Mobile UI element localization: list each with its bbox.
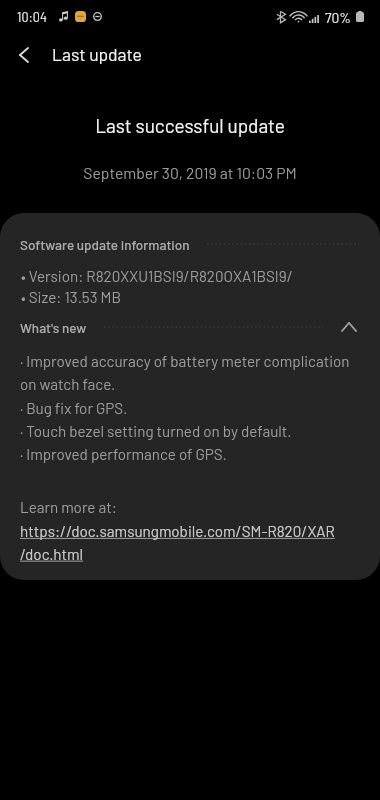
staticText: • Version: R820XXU1BSI9/R820OXA1BSI9/	[21, 267, 293, 285]
staticText: · Bug fix for GPS.	[20, 399, 128, 417]
staticText: 10:04	[17, 9, 47, 24]
button[interactable]: What's new	[0, 317, 380, 337]
staticText: · Improved performance of GPS.	[20, 445, 227, 463]
staticText: Learn more at:	[20, 498, 117, 516]
staticText: September 30, 2019 at 10:03 PM	[0, 163, 380, 182]
staticText: What's new	[20, 319, 87, 335]
staticText: · Touch bezel setting turned on by defau…	[20, 422, 292, 440]
button[interactable]: https://doc.samsungmobile.com/SM-R820/XA…	[20, 522, 335, 563]
staticText: • Size: 13.53 MB	[21, 288, 121, 306]
staticText: Last successful update	[0, 114, 380, 137]
staticText: · Improved accuracy of battery meter com…	[20, 352, 350, 393]
staticText: 70%	[325, 9, 352, 26]
button[interactable]: Back	[0, 31, 48, 79]
staticText: Software update information	[20, 236, 190, 252]
staticText: Last update	[52, 43, 142, 64]
